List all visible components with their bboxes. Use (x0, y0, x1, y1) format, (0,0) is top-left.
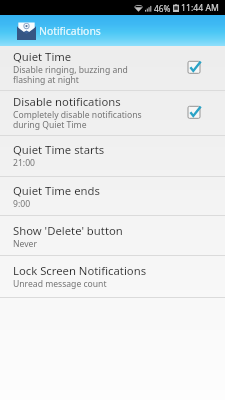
staticText: Quiet Time (13, 49, 72, 64)
staticText: Never (13, 238, 37, 250)
button[interactable]: Quiet Time ends (0, 177, 225, 216)
button[interactable]: Notifications (17, 21, 101, 40)
staticText: Quiet Time ends (13, 183, 100, 198)
staticText: 11:44 AM (181, 2, 219, 14)
staticText: 21:00 (13, 157, 35, 169)
button[interactable]: Quiet Time (0, 46, 225, 91)
staticText: Unread message count (13, 278, 107, 290)
staticText: Notifications (39, 24, 101, 38)
staticText: Show 'Delete' button (13, 223, 123, 238)
staticText: Completely disable notifications during … (13, 109, 142, 131)
button[interactable]: Quiet Time starts (0, 136, 225, 177)
button[interactable]: Toggle Disable notifications (187, 105, 205, 123)
staticText: 46% (154, 3, 171, 14)
staticText: Disable ringing, buzzing and flashing at… (13, 64, 128, 86)
button[interactable]: Show 'Delete' button (0, 216, 225, 256)
button[interactable]: Lock Screen Notifications (0, 256, 225, 298)
button[interactable]: Toggle Quiet Time (187, 60, 205, 78)
staticText: Disable notifications (13, 94, 121, 109)
staticText: Lock Screen Notifications (13, 263, 147, 278)
button[interactable]: Disable notifications (0, 91, 225, 136)
staticText: 9:00 (13, 198, 31, 210)
staticText: Quiet Time starts (13, 142, 105, 157)
